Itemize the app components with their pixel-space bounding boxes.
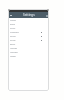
staticText: Notifications <box>10 31 19 33</box>
button[interactable]: Security <box>8 38 49 42</box>
button[interactable]: Notifications <box>8 30 49 34</box>
staticText: Network <box>10 19 17 21</box>
button[interactable]: Language <box>8 46 49 50</box>
staticText: Settings <box>23 13 35 17</box>
button[interactable]: Display <box>8 22 49 26</box>
staticText: Display <box>10 23 16 25</box>
staticText: Language <box>10 47 18 49</box>
staticText: Updates <box>10 55 16 57</box>
staticText: Languages <box>10 51 18 53</box>
button[interactable]: Back <box>9 14 12 17</box>
button[interactable]: Backup <box>8 42 49 46</box>
button[interactable]: Storage <box>8 34 49 38</box>
staticText: Sounds <box>10 27 16 29</box>
button[interactable]: Search <box>45 14 48 17</box>
button[interactable]: Sounds <box>8 26 49 30</box>
staticText: Backup <box>10 43 16 45</box>
button[interactable]: Network <box>8 18 49 22</box>
button[interactable]: Languages <box>8 50 49 54</box>
staticText: Storage <box>10 35 16 37</box>
button[interactable]: Updates <box>8 54 49 58</box>
staticText: Security <box>10 39 16 41</box>
